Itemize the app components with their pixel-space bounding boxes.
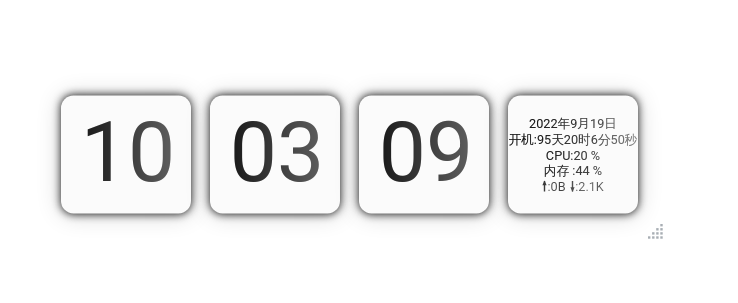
staticText: 03 — [212, 103, 342, 201]
button[interactable]: Hours — [61, 96, 191, 214]
staticText: 开机:95天20时6分50秒 — [508, 132, 638, 148]
staticText: 10 — [63, 103, 193, 201]
button[interactable]: Resize widget — [648, 224, 664, 240]
staticText: :2.1K — [575, 179, 604, 194]
staticText: 09 — [361, 103, 491, 201]
staticText: :0B — [547, 179, 566, 194]
staticText: 2022年9月19日 — [508, 116, 638, 132]
staticText: 内存 :44 % — [508, 163, 638, 179]
staticText: CPU:20 % — [508, 148, 638, 163]
button[interactable]: Minutes — [210, 96, 340, 214]
button[interactable]: Seconds — [359, 96, 489, 214]
button[interactable]: System info — [508, 96, 638, 214]
